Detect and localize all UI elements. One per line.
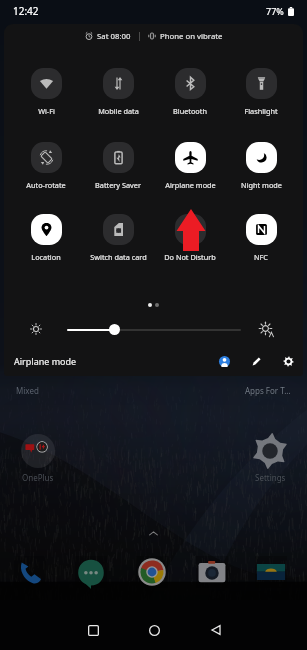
button[interactable]: User (214, 351, 234, 371)
staticText: Airplane mode (165, 180, 216, 190)
staticText: Phone on vibrate (160, 31, 223, 42)
button[interactable]: OnePlus (12, 434, 64, 483)
staticText: Flashlight (244, 106, 278, 116)
staticText: 77% (266, 5, 284, 17)
button[interactable]: Messages (75, 556, 107, 588)
button[interactable]: Night mode (227, 142, 295, 190)
staticText: Auto-rotate (26, 180, 66, 190)
button[interactable]: Chrome (136, 556, 168, 588)
staticText: Bluetooth (173, 106, 207, 116)
button[interactable]: Edit (247, 351, 267, 371)
staticText: Sat 08:00 (97, 31, 131, 42)
staticText: NFC (254, 252, 268, 262)
button[interactable]: Location (12, 214, 80, 262)
staticText: Switch data card (90, 252, 147, 262)
button[interactable]: Battery Saver (84, 142, 152, 190)
button[interactable]: Gallery (255, 556, 287, 588)
button[interactable]: Do Not Disturb (156, 214, 224, 262)
button[interactable]: Phone (14, 556, 46, 588)
button[interactable]: Bluetooth (156, 68, 224, 116)
staticText: Settings (255, 472, 286, 483)
staticText: Night mode (241, 180, 282, 190)
staticText: OnePlus (22, 472, 54, 483)
button[interactable]: Settings (244, 433, 296, 483)
button[interactable]: Camera (196, 556, 228, 588)
staticText: Airplane mode (14, 355, 77, 367)
staticText: Mobile data (98, 106, 139, 116)
button[interactable]: Auto-rotate (12, 142, 80, 190)
staticText: Apps For T... (245, 385, 291, 396)
button[interactable]: Wi-Fi (12, 68, 80, 116)
staticText: Mixed (16, 385, 39, 396)
button[interactable]: Flashlight (227, 68, 295, 116)
staticText: 12:42 (13, 4, 39, 18)
button[interactable]: Back (202, 616, 230, 644)
button[interactable]: Mobile data (84, 68, 152, 116)
button[interactable]: Recents (79, 616, 107, 644)
staticText: Location (31, 252, 61, 262)
button[interactable]: Airplane mode (156, 142, 224, 190)
button[interactable]: Home (140, 616, 168, 644)
staticText: Battery Saver (95, 180, 141, 190)
button[interactable]: NFC (227, 214, 295, 262)
button[interactable]: Settings (278, 351, 298, 371)
staticText: Wi-Fi (38, 106, 55, 116)
staticText: Do Not Disturb (164, 252, 216, 262)
button[interactable]: Switch data card (84, 214, 152, 262)
